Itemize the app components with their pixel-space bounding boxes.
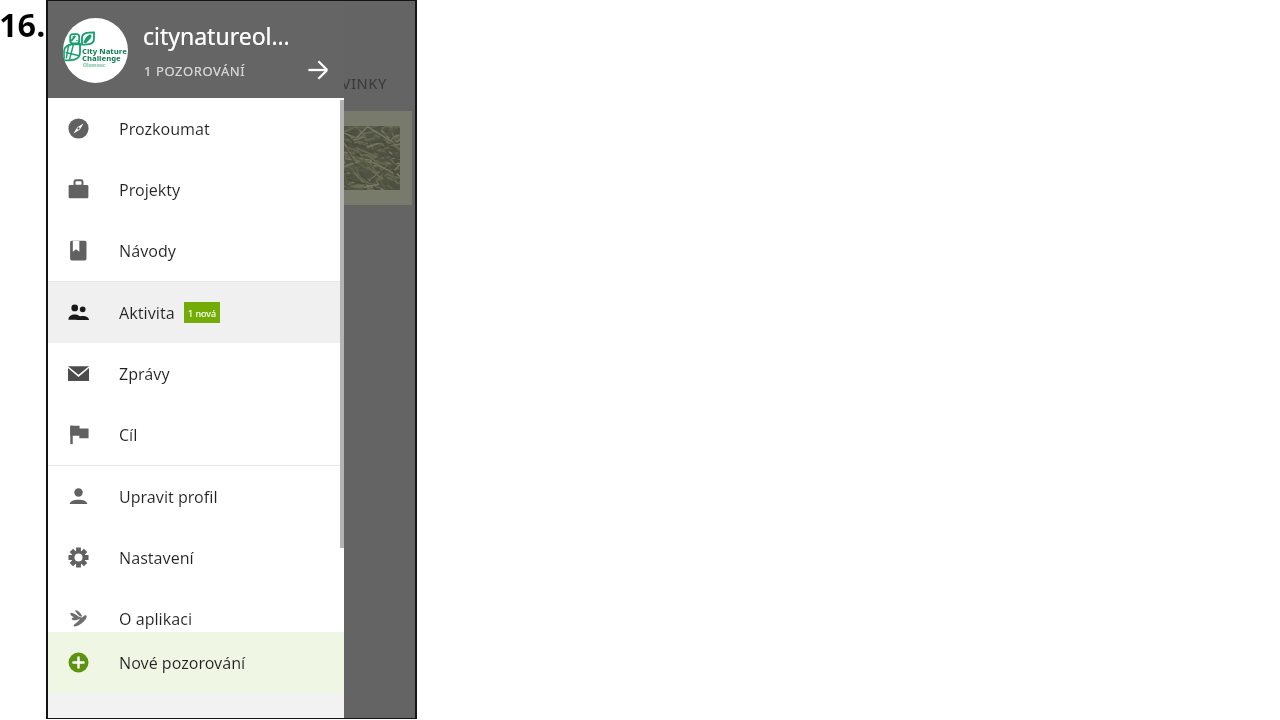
button[interactable]: Upravit profil bbox=[48, 466, 344, 527]
button[interactable]: Nové pozorování bbox=[48, 632, 344, 693]
button[interactable]: Návody bbox=[48, 220, 344, 281]
button[interactable]: O aplikaci bbox=[48, 588, 344, 649]
staticText: Nové pozorování bbox=[119, 652, 246, 674]
staticText: Upravit profil bbox=[119, 486, 218, 508]
staticText: Prozkoumat bbox=[119, 118, 210, 140]
button[interactable]: City Nature bbox=[48, 1, 344, 98]
staticText: Challenge bbox=[82, 53, 121, 63]
staticText: Projekty bbox=[119, 179, 181, 201]
staticText: citynatureol… bbox=[143, 20, 290, 51]
button[interactable]: Prozkoumat bbox=[48, 98, 344, 159]
staticText: Návody bbox=[119, 240, 176, 262]
button[interactable]: Zprávy bbox=[48, 343, 344, 404]
staticText: NOVINKY bbox=[318, 73, 387, 93]
button[interactable]: Cíl bbox=[48, 404, 344, 465]
button[interactable]: Aktivita bbox=[48, 282, 344, 343]
button[interactable]: Projekty bbox=[48, 159, 344, 220]
staticText: 1 nová bbox=[188, 307, 216, 319]
button[interactable]: Nastavení bbox=[48, 527, 344, 588]
staticText: Olomouc bbox=[83, 62, 106, 69]
staticText: Aktivita bbox=[119, 302, 175, 324]
staticText: 16. bbox=[0, 2, 46, 46]
staticText: Cíl bbox=[119, 424, 138, 446]
staticText: City Nature bbox=[82, 46, 127, 56]
staticText: Nastavení bbox=[119, 547, 194, 569]
staticText: 1 POZOROVÁNÍ bbox=[144, 62, 246, 80]
staticText: O aplikaci bbox=[119, 608, 193, 630]
button[interactable]: Switch account bbox=[304, 56, 332, 84]
staticText: Zprávy bbox=[119, 363, 170, 385]
